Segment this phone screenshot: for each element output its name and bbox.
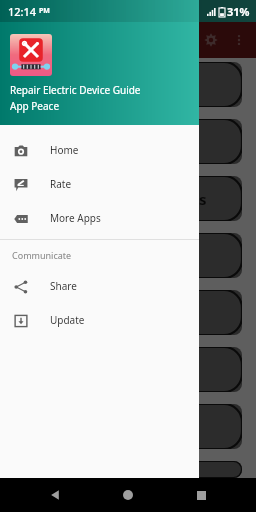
staticText: 12:14: [8, 4, 37, 19]
button[interactable]: Repair Device: [14, 62, 242, 107]
button[interactable]: Instructions and Tips: [14, 176, 242, 221]
button[interactable]: Home Appliances: [14, 119, 242, 164]
button[interactable]: Back: [42, 482, 68, 508]
staticText: PM: [39, 6, 50, 16]
button[interactable]: Settings: [196, 25, 226, 55]
staticText: Communicate: [12, 249, 72, 261]
button[interactable]: Share: [0, 269, 199, 303]
staticText: Share: [50, 279, 77, 293]
staticText: Repair Electric Device Guide: [10, 83, 141, 97]
button[interactable]: Repair Software: [14, 461, 242, 478]
button[interactable]: More options: [226, 27, 252, 53]
staticText: App Peace: [10, 99, 60, 113]
staticText: Update: [50, 313, 85, 327]
button[interactable]: Repair LCD: [14, 347, 242, 392]
staticText: Home Appliances: [63, 132, 193, 152]
staticText: Troubleshooting: [67, 246, 190, 266]
button[interactable]: Troubleshooting: [14, 233, 242, 278]
button[interactable]: Electric Circuit: [14, 290, 242, 335]
button[interactable]: Home: [0, 133, 199, 167]
staticText: Home: [50, 143, 79, 157]
button[interactable]: Home: [115, 482, 141, 508]
staticText: 31%: [227, 4, 250, 19]
button[interactable]: More Apps: [0, 201, 199, 235]
staticText: More Apps: [50, 211, 101, 225]
staticText: Repair Device: [77, 75, 179, 95]
button[interactable]: Recents: [188, 482, 214, 508]
button[interactable]: Rate: [0, 167, 199, 201]
staticText: Instructions and Tips: [49, 189, 207, 209]
button[interactable]: Update: [0, 303, 199, 337]
staticText: Rate: [50, 177, 72, 191]
button[interactable]: USB Port on: [14, 404, 242, 449]
staticText: Electric Circuit: [74, 303, 182, 323]
